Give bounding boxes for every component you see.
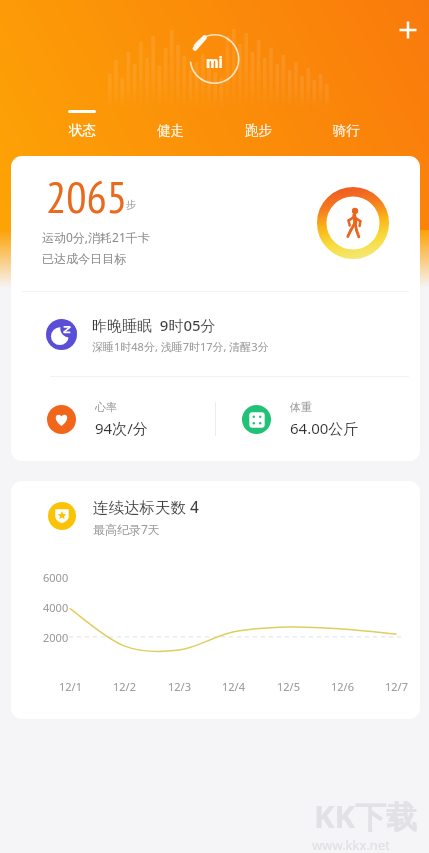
staticText: 最高纪录7天	[93, 521, 160, 537]
staticText: 12/4	[222, 679, 245, 694]
button[interactable]: 跑步	[214, 101, 302, 145]
staticText: 昨晚睡眠 9时05分	[92, 315, 216, 335]
staticText: 12/6	[331, 679, 354, 694]
staticText: 12/5	[277, 679, 300, 694]
staticText: 6000	[43, 570, 69, 585]
button[interactable]: 2065	[11, 156, 420, 291]
button[interactable]: 体重	[215, 377, 420, 461]
staticText: 12/7	[385, 679, 408, 694]
button[interactable]: 昨晚睡眠 9时05分	[11, 292, 420, 376]
staticText: 12/2	[113, 679, 136, 694]
button[interactable]: Add	[390, 12, 426, 48]
staticText: 4000	[43, 600, 69, 615]
staticText: 状态	[69, 122, 96, 139]
staticText: 深睡1时48分, 浅睡7时17分, 清醒3分	[92, 339, 269, 354]
staticText: 跑步	[245, 122, 272, 139]
button[interactable]: 心率	[11, 377, 215, 461]
staticText: 2065	[46, 167, 128, 225]
staticText: 12/1	[59, 679, 82, 694]
staticText: 12/3	[168, 679, 191, 694]
staticText: 健走	[157, 122, 184, 139]
staticText: 连续达标天数 4	[93, 496, 199, 517]
staticText: www.kkx.net	[312, 836, 390, 853]
staticText: 步	[126, 198, 136, 211]
button[interactable]: 骑行	[302, 101, 390, 145]
button[interactable]: 状态	[38, 101, 126, 145]
staticText: mi	[206, 52, 223, 72]
staticText: 64.00公斤	[290, 418, 359, 438]
staticText: 心率	[95, 400, 117, 414]
staticText: 94次/分	[95, 418, 148, 438]
staticText: 运动0分,消耗21千卡	[42, 229, 150, 245]
button[interactable]: 连续达标天数 4	[11, 481, 420, 551]
staticText: 骑行	[333, 122, 360, 139]
button[interactable]: 健走	[126, 101, 214, 145]
staticText: 2000	[43, 630, 69, 645]
staticText: 体重	[290, 400, 312, 414]
staticText: KK下载	[314, 795, 418, 837]
staticText: 已达成今日目标	[42, 251, 126, 266]
